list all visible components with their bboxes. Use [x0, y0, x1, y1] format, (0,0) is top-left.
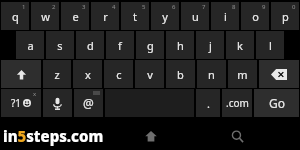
button[interactable]: z	[43, 60, 71, 88]
staticText: r	[103, 9, 108, 24]
staticText: 0	[292, 3, 296, 11]
button[interactable]: f	[106, 31, 134, 59]
button[interactable]: b	[166, 60, 195, 88]
staticText: i	[224, 9, 227, 24]
staticText: 2	[52, 3, 56, 11]
staticText: 9	[262, 3, 266, 11]
button[interactable]: a	[16, 31, 44, 59]
staticText: x	[85, 67, 91, 82]
staticText: Go	[269, 95, 285, 111]
button[interactable]: q	[1, 2, 29, 30]
button[interactable]: j	[196, 31, 224, 59]
staticText: l	[269, 38, 272, 53]
button[interactable]: o	[241, 2, 269, 30]
button[interactable]: Backspace	[259, 60, 299, 88]
staticText: 8	[232, 3, 236, 11]
staticText: p	[282, 9, 289, 24]
staticText: 4	[112, 3, 116, 11]
button[interactable]: k	[226, 31, 254, 59]
button[interactable]: .com	[222, 89, 252, 117]
button[interactable]: e	[61, 2, 89, 30]
staticText: .	[207, 96, 210, 111]
button[interactable]: .	[196, 89, 220, 117]
button[interactable]: u	[181, 2, 209, 30]
staticText: z	[54, 67, 60, 82]
button[interactable]: v	[135, 60, 164, 88]
button[interactable]: Search	[227, 126, 247, 146]
staticText: s	[57, 38, 63, 53]
staticText: y	[162, 9, 168, 24]
button[interactable]: Shift	[1, 60, 41, 88]
button[interactable]: @	[74, 89, 103, 117]
button[interactable]: x	[73, 60, 102, 88]
staticText: t	[133, 9, 137, 24]
button[interactable]: r	[91, 2, 119, 30]
staticText: 3	[82, 3, 86, 11]
staticText: n	[208, 67, 215, 82]
staticText: o	[252, 9, 259, 24]
button[interactable]: h	[166, 31, 194, 59]
staticText: 5	[142, 3, 146, 11]
button[interactable]: Go	[254, 89, 299, 117]
button[interactable]: s	[46, 31, 74, 59]
button[interactable]: p	[271, 2, 299, 30]
button[interactable]: m	[228, 60, 257, 88]
staticText: j	[209, 38, 212, 53]
button[interactable]: ?1	[1, 89, 41, 117]
button[interactable]: c	[104, 60, 133, 88]
staticText: @	[83, 95, 94, 111]
staticText: x	[33, 90, 37, 98]
staticText: 1	[22, 3, 26, 11]
staticText: g	[147, 38, 154, 53]
staticText: c	[116, 67, 122, 82]
staticText: w	[41, 9, 50, 24]
button[interactable]: Voice input	[43, 89, 72, 117]
staticText: .com	[226, 96, 249, 110]
staticText: d	[87, 38, 94, 53]
staticText: h	[177, 38, 184, 53]
staticText: f	[118, 38, 122, 53]
staticText: 6	[172, 3, 176, 11]
staticText: e	[72, 9, 79, 24]
staticText: k	[237, 38, 243, 53]
staticText: u	[192, 9, 199, 24]
staticText: q	[12, 9, 19, 24]
staticText: a	[27, 38, 34, 53]
button[interactable]: w	[31, 2, 59, 30]
button[interactable]: g	[136, 31, 164, 59]
staticText: b	[177, 67, 184, 82]
staticText: ?1	[11, 96, 22, 110]
staticText: v	[147, 67, 153, 82]
button[interactable]: i	[211, 2, 239, 30]
button[interactable]: Home	[141, 126, 161, 146]
button[interactable]: l	[256, 31, 284, 59]
staticText: in5steps.com	[3, 126, 104, 146]
button[interactable]: d	[76, 31, 104, 59]
button[interactable]: n	[197, 60, 226, 88]
staticText: m	[237, 67, 248, 82]
button[interactable]: y	[151, 2, 179, 30]
staticText: 7	[202, 3, 206, 11]
button[interactable]: t	[121, 2, 149, 30]
